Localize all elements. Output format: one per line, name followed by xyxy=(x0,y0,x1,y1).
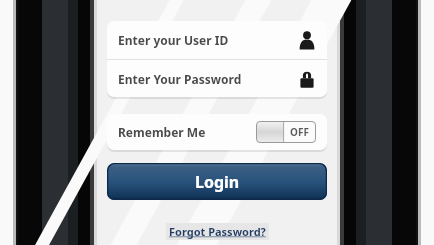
button[interactable]: Remember Me off xyxy=(256,121,316,143)
button[interactable]: Enter Your Password xyxy=(107,60,327,97)
other: Password xyxy=(297,69,317,89)
staticText: Enter your User ID xyxy=(118,32,229,48)
staticText: Enter Your Password xyxy=(118,71,242,87)
staticText: Remember Me xyxy=(118,124,206,140)
button[interactable]: Login xyxy=(107,163,327,200)
staticText: Forgot Password? xyxy=(169,224,266,239)
button[interactable]: Forgot Password? xyxy=(166,223,269,240)
other: User ID xyxy=(297,30,317,50)
staticText: Login xyxy=(195,171,240,193)
button[interactable]: Enter your User ID xyxy=(107,21,327,59)
button[interactable]: Remember Me xyxy=(107,114,327,150)
staticText: OFF xyxy=(290,125,309,139)
